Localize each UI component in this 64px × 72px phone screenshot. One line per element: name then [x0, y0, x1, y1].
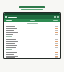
- button[interactable]: [4, 25, 60, 27]
- button[interactable]: [4, 55, 60, 57]
- button[interactable]: [4, 46, 60, 48]
- button[interactable]: [4, 53, 60, 55]
- button[interactable]: Menu: [5, 16, 7, 18]
- button[interactable]: [4, 44, 60, 46]
- button[interactable]: [4, 40, 60, 42]
- button[interactable]: [30, 20, 35, 21]
- button[interactable]: [4, 51, 60, 53]
- button[interactable]: Menu: [4, 15, 60, 19]
- button[interactable]: [4, 27, 60, 29]
- button[interactable]: [6, 20, 12, 21]
- button[interactable]: [4, 33, 60, 35]
- button[interactable]: [4, 38, 60, 40]
- button[interactable]: [4, 31, 60, 33]
- button[interactable]: [4, 29, 60, 31]
- button[interactable]: [4, 57, 60, 58]
- button[interactable]: [4, 42, 60, 44]
- button[interactable]: [53, 20, 58, 21]
